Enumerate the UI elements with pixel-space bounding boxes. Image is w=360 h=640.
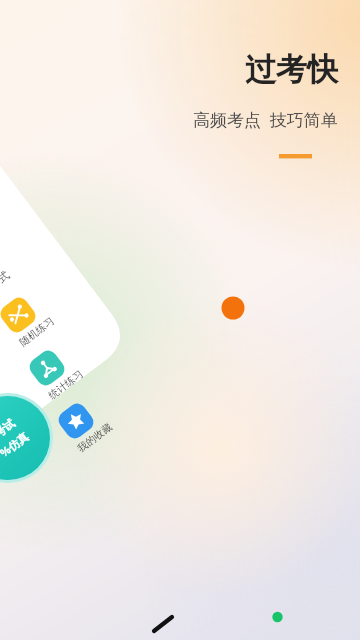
- button[interactable]: 过考快 启动页: [0, 0, 360, 640]
